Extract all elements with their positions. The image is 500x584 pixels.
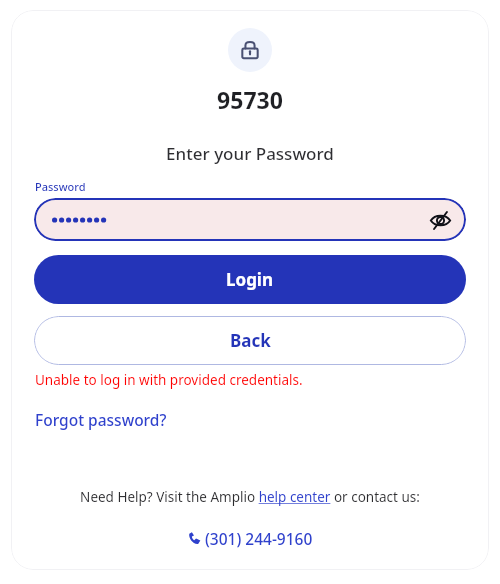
staticText: Forgot password?	[35, 409, 167, 430]
button[interactable]: Hide password	[34, 198, 466, 241]
staticText: Login	[226, 268, 274, 291]
staticText: Back	[230, 329, 271, 352]
button[interactable]: Login	[34, 255, 466, 304]
staticText: 95730	[217, 84, 283, 115]
button[interactable]: (301) 244-9160	[11, 528, 489, 549]
button[interactable]: Hide password	[422, 202, 458, 238]
staticText: Unable to log in with provided credentia…	[35, 371, 303, 389]
button[interactable]: Forgot password?	[35, 409, 167, 430]
staticText: (301) 244-9160	[205, 528, 313, 549]
staticText: Password	[35, 179, 86, 194]
button[interactable]: Back	[34, 316, 466, 365]
staticText: Enter your Password	[166, 142, 334, 165]
staticText: Need Help? Visit the Amplio help center …	[80, 488, 420, 506]
